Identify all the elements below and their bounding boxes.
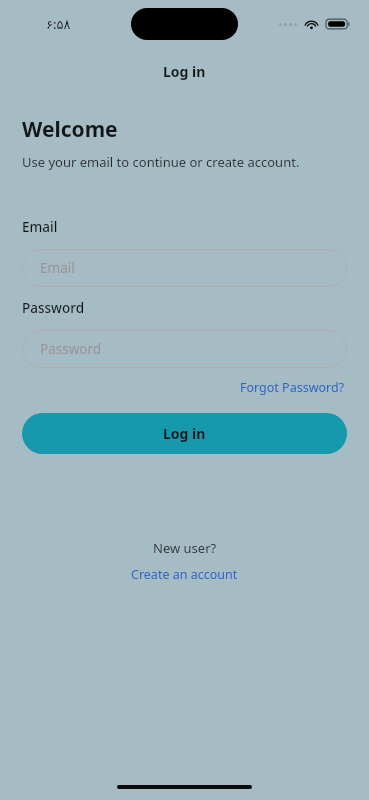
button[interactable]: Log in — [22, 413, 347, 454]
staticText: Create an account — [131, 566, 238, 583]
staticText: New user? — [153, 539, 217, 557]
staticText: ۶:۵۸ — [46, 15, 71, 33]
button[interactable]: Create an account — [127, 564, 242, 585]
staticText: Email — [40, 259, 75, 277]
button[interactable]: Forgot Password? — [238, 377, 347, 398]
staticText: Forgot Password? — [240, 379, 345, 396]
staticText: Log in — [163, 424, 206, 443]
button[interactable]: Password — [22, 330, 347, 368]
staticText: Email — [22, 218, 58, 236]
button[interactable]: Email — [22, 249, 347, 287]
staticText: Log in — [163, 62, 206, 81]
staticText: Use your email to continue or create acc… — [22, 153, 300, 171]
staticText: Password — [40, 340, 102, 358]
staticText: Welcome — [22, 115, 118, 144]
staticText: Password — [22, 299, 85, 317]
